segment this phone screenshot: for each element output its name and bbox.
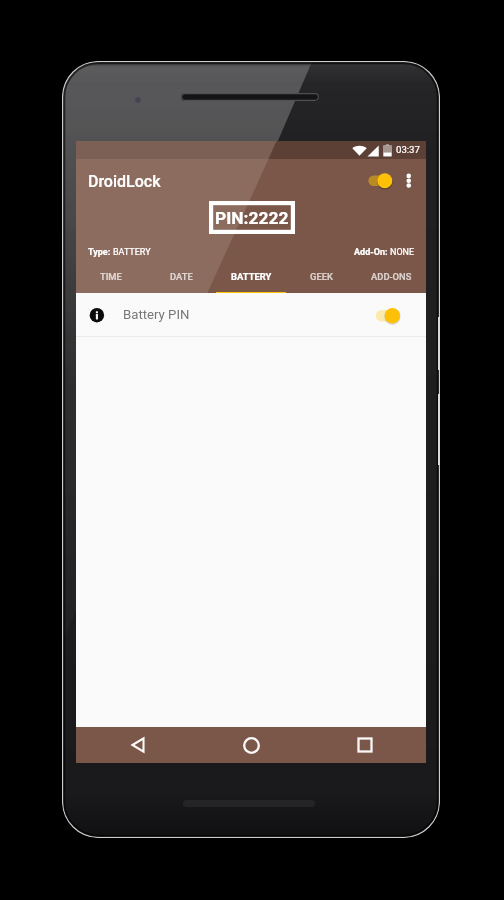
staticText: Add-On: — [354, 247, 390, 258]
staticText: ADD-ONS — [371, 271, 412, 282]
button[interactable]: Back — [118, 727, 157, 763]
button[interactable]: Enable lock — [365, 167, 395, 195]
button[interactable]: GEEK — [286, 266, 356, 295]
button[interactable]: Toggle Battery PIN — [372, 302, 402, 330]
button[interactable]: Battery PIN — [76, 293, 426, 337]
button[interactable]: DATE — [146, 266, 216, 295]
button[interactable]: Recents — [345, 727, 384, 763]
staticText: BATTERY — [231, 271, 272, 282]
button[interactable]: More options — [400, 167, 418, 195]
button[interactable]: ADD-ONS — [356, 266, 426, 295]
staticText: Battery PIN — [123, 307, 190, 322]
staticText: TIME — [100, 271, 122, 282]
button[interactable]: BATTERY — [216, 266, 286, 295]
staticText: GEEK — [310, 271, 333, 282]
button[interactable]: Home — [232, 727, 271, 763]
staticText: NONE — [390, 247, 415, 258]
staticText: DroidLock — [88, 172, 161, 191]
staticText: Type: — [88, 247, 113, 258]
staticText: PIN:2222 — [215, 208, 289, 228]
staticText: 03:37 — [396, 144, 420, 155]
button[interactable]: TIME — [76, 266, 146, 295]
staticText: DATE — [170, 271, 193, 282]
staticText: BATTERY — [113, 247, 151, 258]
